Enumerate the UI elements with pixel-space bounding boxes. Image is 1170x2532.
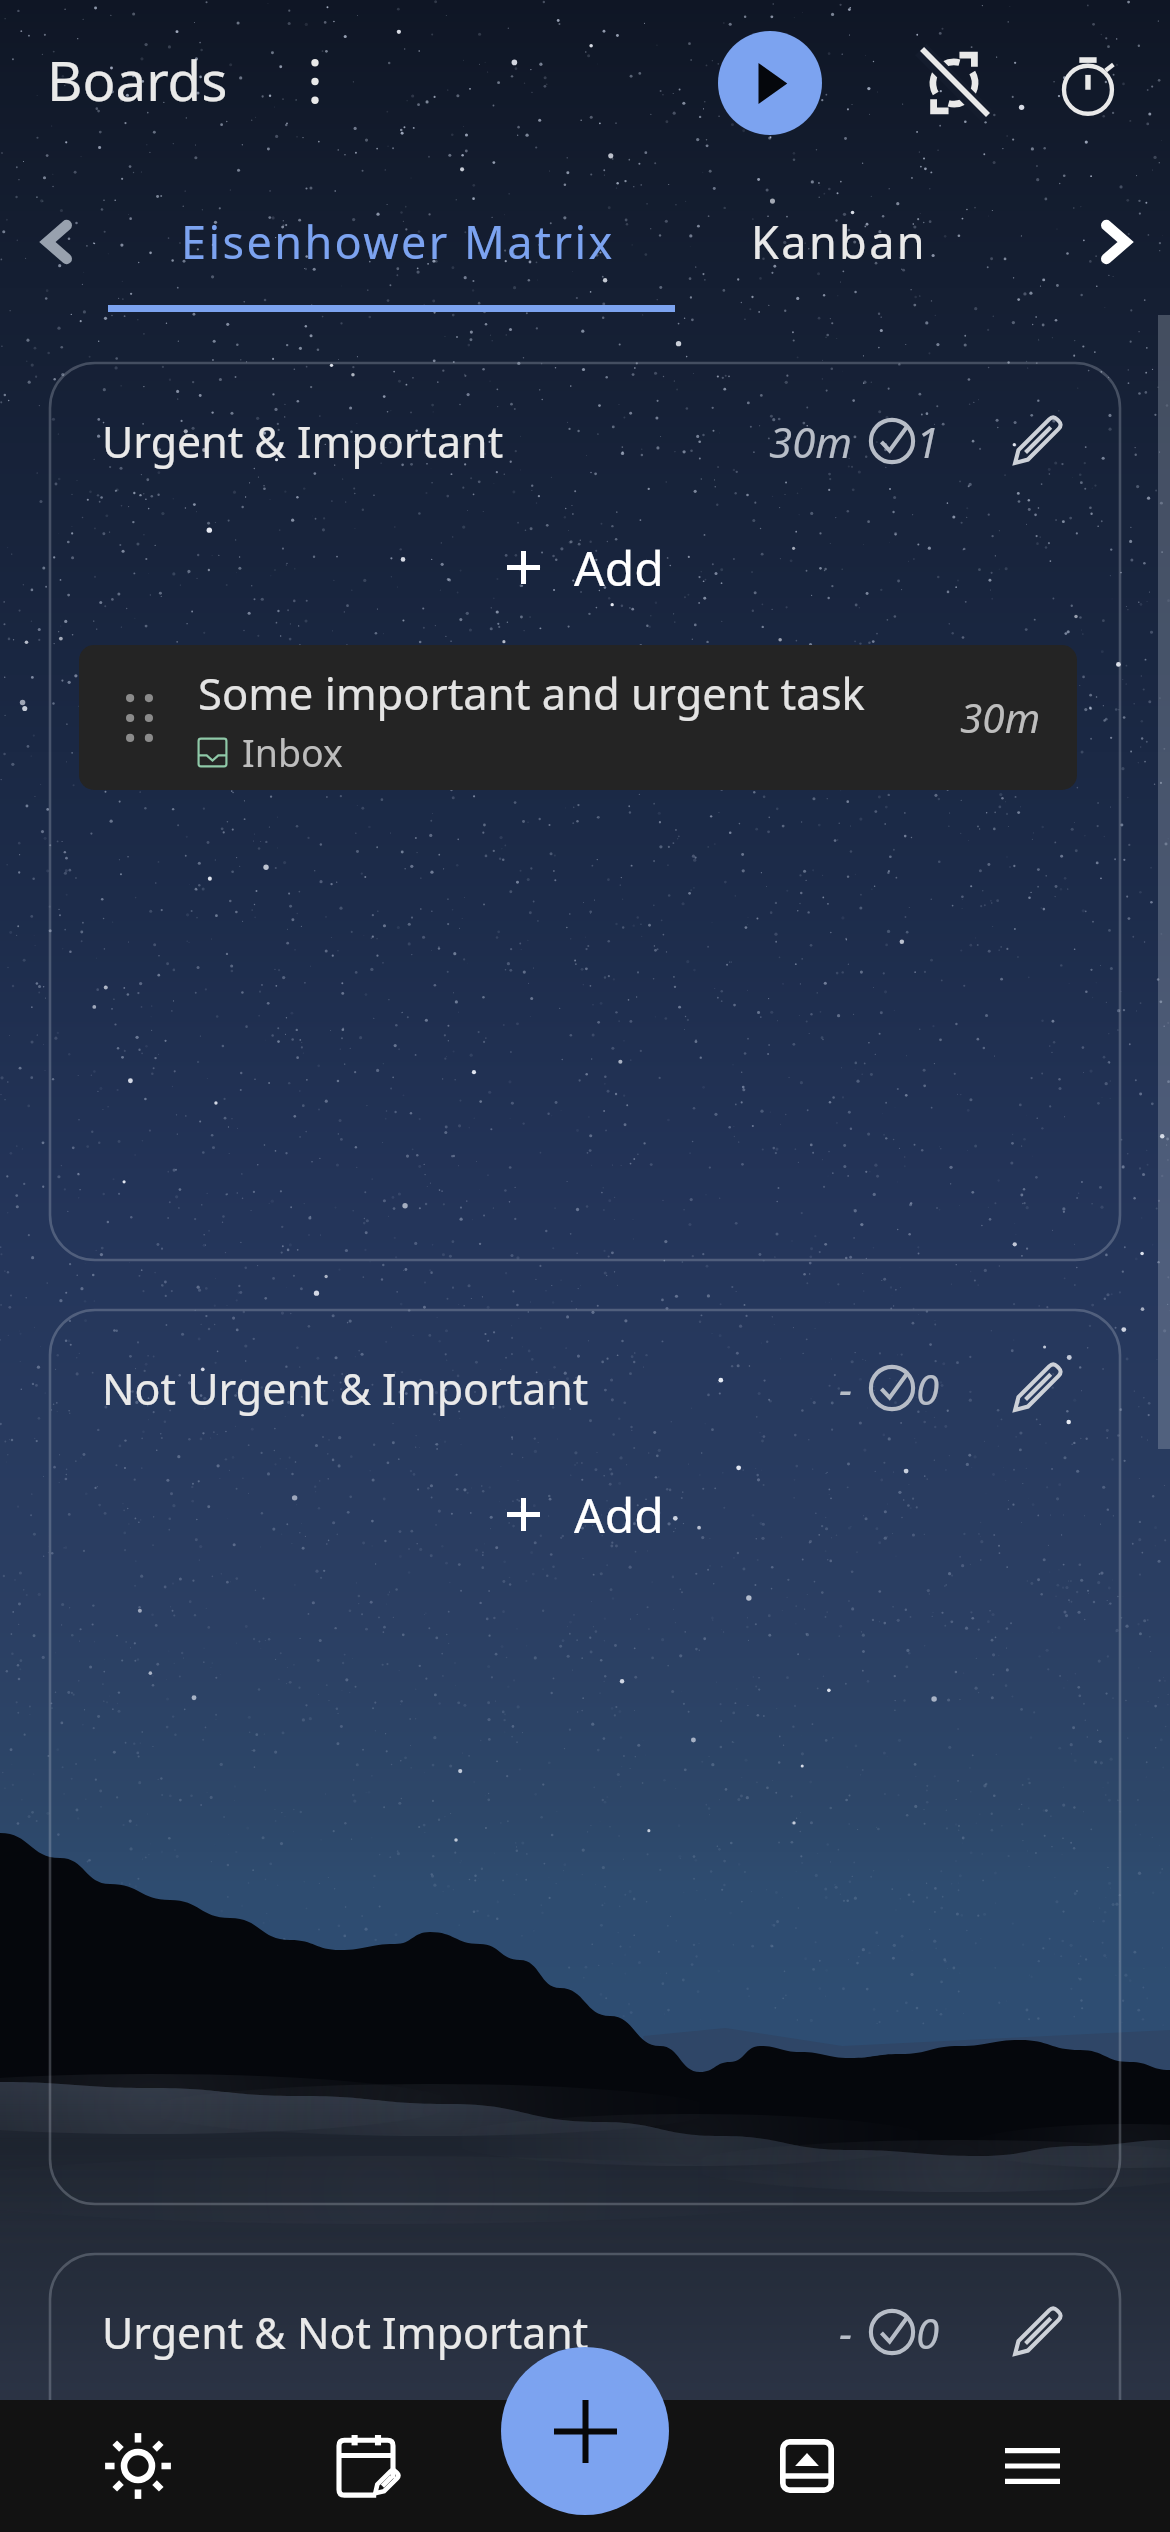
button[interactable]: Archive <box>720 2400 894 2532</box>
staticText: Add <box>574 1482 664 1547</box>
staticText: Not Urgent & Important <box>102 1359 589 1417</box>
button[interactable]: Previous <box>0 185 114 299</box>
staticText: Boards <box>47 43 228 117</box>
button[interactable]: Eisenhower Matrix <box>181 211 615 272</box>
staticText: Urgent & Important <box>102 412 504 470</box>
button[interactable]: Add <box>501 2347 669 2515</box>
button[interactable]: Next <box>1053 179 1170 305</box>
button[interactable]: Play <box>718 31 822 135</box>
staticText: Urgent & Not Important <box>102 2303 589 2361</box>
staticText: - <box>839 1360 853 1417</box>
button[interactable]: Sync off <box>894 23 1014 143</box>
button[interactable]: Edit <box>976 1328 1096 1448</box>
button[interactable]: Planner <box>282 2400 456 2532</box>
staticText: 0 <box>916 2304 940 2361</box>
button[interactable]: More options <box>264 30 366 132</box>
button[interactable]: Some important and urgent task <box>79 645 1077 790</box>
button[interactable]: Menu <box>945 2400 1119 2532</box>
staticText: 1 <box>916 413 940 470</box>
staticText: 30m <box>769 413 853 470</box>
button[interactable]: Edit <box>976 2272 1096 2392</box>
staticText: Add <box>574 2426 664 2491</box>
staticText: Add <box>574 535 664 600</box>
staticText: Some important and urgent task <box>198 663 865 722</box>
button[interactable]: Focus <box>51 2400 225 2532</box>
button[interactable]: Edit <box>976 381 1096 501</box>
staticText: 30m <box>960 690 1041 745</box>
staticText: - <box>839 2304 853 2361</box>
button[interactable]: Timer <box>1029 23 1149 143</box>
staticText: 0 <box>916 1360 940 1417</box>
button[interactable]: Add <box>50 2410 1120 2506</box>
button[interactable]: Add <box>50 1466 1120 1562</box>
button[interactable]: Kanban <box>751 211 928 272</box>
button[interactable]: Add <box>50 519 1120 615</box>
staticText: Inbox <box>242 727 343 778</box>
